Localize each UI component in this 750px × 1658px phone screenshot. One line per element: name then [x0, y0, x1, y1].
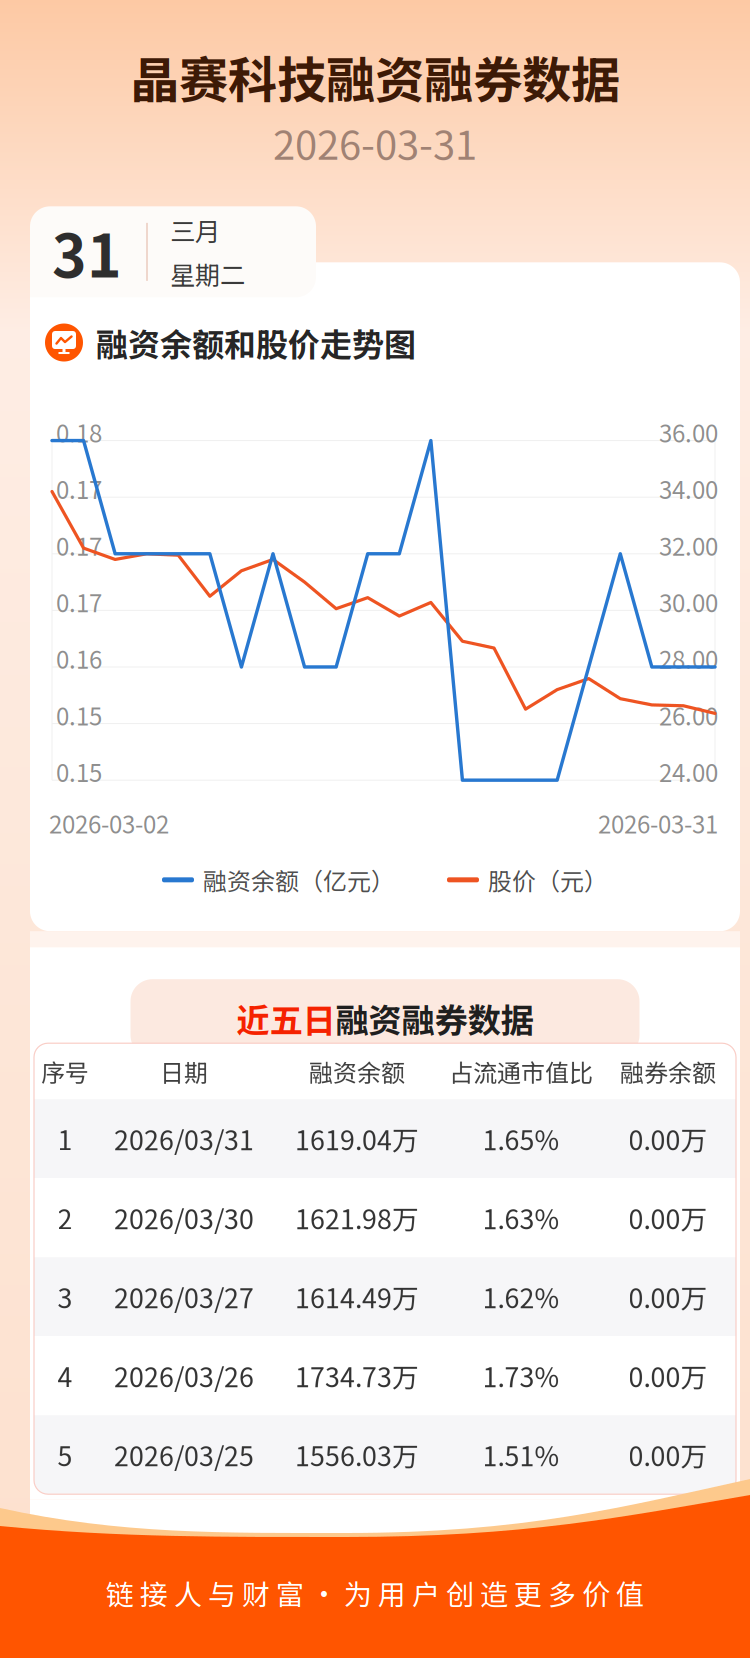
staticText: 0.00万 — [628, 1119, 707, 1158]
staticText: 2026-03-02 — [49, 806, 169, 840]
staticText: 30.00 — [659, 584, 718, 619]
staticText: 链接人与财富·为用户创造更多价值 — [106, 1572, 644, 1613]
staticText: 2026/03/27 — [114, 1277, 254, 1316]
staticText: 1.63% — [482, 1198, 559, 1237]
staticText: 1734.73万 — [295, 1356, 419, 1395]
staticText: 日期 — [160, 1054, 208, 1089]
staticText: 1621.98万 — [295, 1198, 419, 1237]
staticText: 融券余额 — [620, 1054, 716, 1089]
staticText: 0.17 — [56, 584, 102, 619]
staticText: 0.18 — [56, 415, 102, 449]
staticText: 融资余额（亿元） — [203, 862, 395, 897]
staticText: 融资融券数据 — [335, 994, 533, 1042]
staticText: 0.15 — [56, 754, 102, 789]
staticText: 近五日 — [236, 994, 335, 1042]
staticText: 1 — [57, 1119, 72, 1158]
staticText: 股价（元） — [488, 862, 608, 897]
staticText: 1.62% — [482, 1277, 559, 1316]
staticText: 1619.04万 — [295, 1119, 419, 1158]
staticText: 0.00万 — [628, 1198, 707, 1237]
staticText: 0.00万 — [628, 1435, 707, 1474]
staticText: 1556.03万 — [295, 1435, 419, 1474]
staticText: 占流通市值比 — [449, 1054, 593, 1089]
staticText: 2026-03-31 — [273, 113, 477, 171]
staticText: 4 — [57, 1356, 72, 1395]
staticText: 2026-03-31 — [598, 806, 718, 840]
staticText: 3 — [57, 1277, 72, 1316]
staticText: 5 — [57, 1435, 72, 1474]
staticText: 2026/03/26 — [114, 1356, 254, 1395]
staticText: 0.00万 — [628, 1356, 707, 1395]
staticText: 32.00 — [659, 528, 718, 563]
staticText: 晶赛科技融资融券数据 — [130, 41, 620, 112]
staticText: 34.00 — [659, 471, 718, 506]
staticText: 0.00万 — [628, 1277, 707, 1316]
staticText: 24.00 — [659, 754, 718, 789]
staticText: 1.51% — [482, 1435, 559, 1474]
staticText: 0.17 — [56, 528, 102, 563]
staticText: 36.00 — [659, 415, 718, 449]
staticText: 星期二 — [170, 255, 245, 292]
staticText: 26.00 — [659, 698, 718, 732]
staticText: 1614.49万 — [295, 1277, 419, 1316]
staticText: 2026/03/25 — [114, 1435, 254, 1474]
staticText: 融资余额和股价走势图 — [96, 319, 416, 366]
staticText: 0.15 — [56, 698, 102, 732]
staticText: 0.17 — [56, 471, 102, 506]
staticText: 2026/03/31 — [114, 1119, 254, 1158]
staticText: 1.73% — [482, 1356, 559, 1395]
staticText: 序号 — [41, 1054, 89, 1089]
staticText: 三月 — [170, 212, 220, 248]
staticText: 31 — [52, 209, 122, 294]
staticText: 0.16 — [56, 641, 102, 676]
staticText: 28.00 — [659, 641, 718, 676]
staticText: 2026/03/30 — [114, 1198, 254, 1237]
staticText: 2 — [57, 1198, 72, 1237]
staticText: 融资余额 — [309, 1054, 405, 1089]
staticText: 1.65% — [482, 1119, 559, 1158]
